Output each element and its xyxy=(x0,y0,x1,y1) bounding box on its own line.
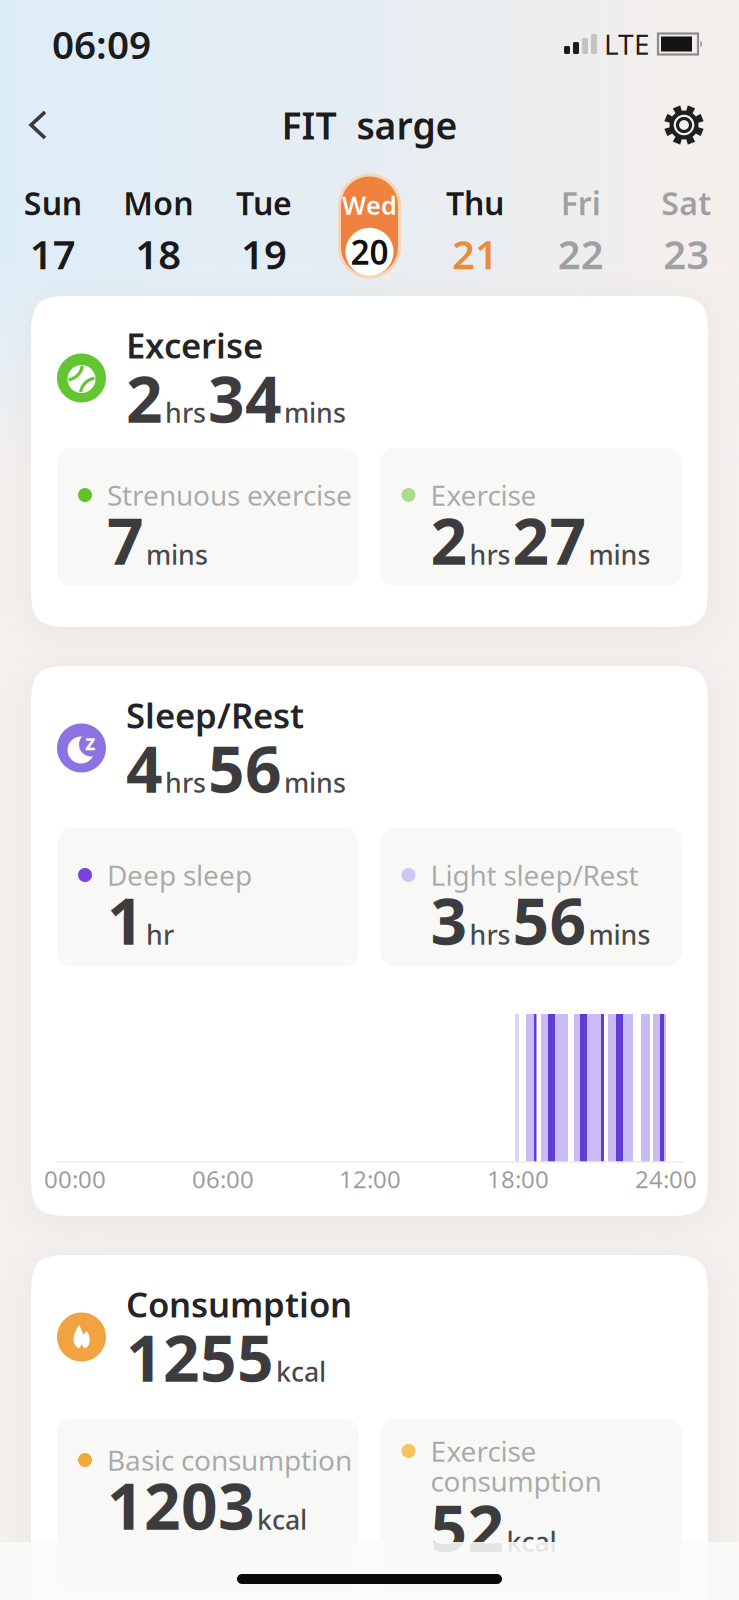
staticText: hr xyxy=(146,917,174,952)
staticText: z xyxy=(85,728,96,756)
staticText: Deep sleep xyxy=(107,856,252,894)
staticText: mins xyxy=(588,537,650,572)
staticText: kcal xyxy=(506,1524,556,1559)
staticText: 21 xyxy=(452,227,498,280)
staticText: mins xyxy=(284,395,346,430)
staticText: 06:00 xyxy=(192,1163,254,1195)
staticText: consumption xyxy=(430,1462,601,1500)
staticText: 2 xyxy=(430,497,467,582)
staticText: hrs xyxy=(469,537,510,572)
staticText: Basic consumption xyxy=(107,1441,352,1479)
staticText: 17 xyxy=(30,227,76,280)
button[interactable]: Mon xyxy=(106,172,211,270)
button[interactable] xyxy=(0,110,48,140)
staticText: 1255 xyxy=(126,1314,274,1399)
button[interactable]: Thu xyxy=(422,172,528,270)
staticText: 56 xyxy=(208,725,282,810)
staticText: hrs xyxy=(165,765,206,800)
staticText: 18 xyxy=(135,227,181,280)
staticText: 22 xyxy=(558,227,604,280)
staticText: Tue xyxy=(236,182,292,224)
staticText: Sleep/Rest xyxy=(126,692,304,738)
staticText: Exercise xyxy=(430,476,536,514)
button[interactable]: Wed xyxy=(317,168,422,273)
staticText: Strenuous exercise xyxy=(107,476,352,514)
staticText: 34 xyxy=(208,355,282,440)
staticText: hrs xyxy=(469,917,510,952)
staticText: 12:00 xyxy=(339,1163,401,1195)
staticText: 3 xyxy=(430,877,467,962)
staticText: Excerise xyxy=(126,322,263,368)
staticText: 06:09 xyxy=(52,18,151,70)
staticText: Light sleep/Rest xyxy=(430,856,638,894)
staticText: mins xyxy=(146,537,208,572)
staticText: Sat xyxy=(661,182,711,224)
staticText: 18:00 xyxy=(487,1163,549,1195)
staticText: 1 xyxy=(107,877,144,962)
staticText: kcal xyxy=(276,1354,326,1389)
staticText: 23 xyxy=(663,227,709,280)
staticText: 7 xyxy=(107,497,144,582)
staticText: LTE xyxy=(604,25,650,63)
button[interactable]: Sat xyxy=(633,172,739,270)
staticText: hrs xyxy=(165,395,206,430)
staticText: Sun xyxy=(24,182,82,224)
button[interactable]: Sun xyxy=(0,172,106,270)
staticText: 27 xyxy=(512,497,586,582)
staticText: Thu xyxy=(446,182,504,224)
staticText: FIT sarge xyxy=(281,100,457,150)
button[interactable]: Tue xyxy=(211,172,317,270)
staticText: mins xyxy=(588,917,650,952)
staticText: 56 xyxy=(512,877,586,962)
staticText: 24:00 xyxy=(635,1163,697,1195)
button[interactable] xyxy=(663,104,739,146)
staticText: kcal xyxy=(257,1502,307,1537)
staticText: Exercise xyxy=(430,1432,536,1470)
staticText: Fri xyxy=(561,182,601,224)
staticText: 19 xyxy=(241,227,287,280)
staticText: 1203 xyxy=(107,1462,255,1547)
staticText: Wed xyxy=(342,188,397,222)
staticText: mins xyxy=(284,765,346,800)
staticText: 52 xyxy=(430,1484,504,1569)
staticText: 00:00 xyxy=(44,1163,106,1195)
staticText: 2 xyxy=(126,355,163,440)
staticText: Consumption xyxy=(126,1281,352,1327)
staticText: 20 xyxy=(350,230,388,274)
button[interactable]: Fri xyxy=(528,172,633,270)
staticText: Mon xyxy=(123,182,193,224)
staticText: 4 xyxy=(126,725,163,810)
